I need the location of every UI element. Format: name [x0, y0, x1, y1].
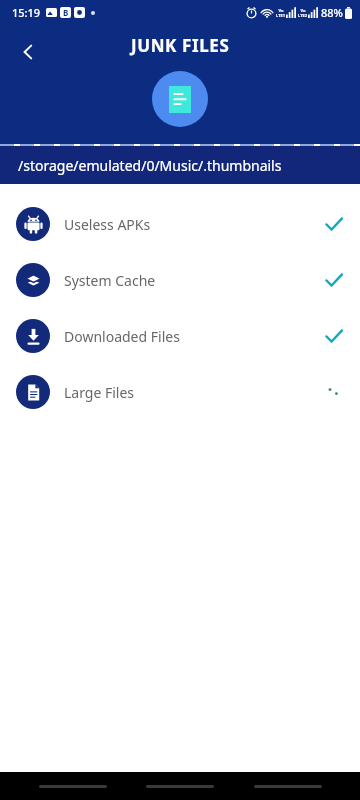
staticText: LTE2 [298, 13, 307, 18]
button[interactable]: Useless APKs [0, 196, 360, 252]
staticText: 15:19 [12, 5, 41, 20]
staticText: LTE1 [276, 13, 285, 18]
staticText: Vo [300, 8, 306, 13]
staticText: System Cache [64, 271, 156, 290]
staticText: Vo [278, 8, 284, 13]
staticText: /storage/emulated/0/Music/.thumbnails [18, 156, 282, 175]
button[interactable]: Navigation button [253, 774, 323, 798]
staticText: JUNK FILES [131, 34, 230, 57]
button[interactable]: Large Files [0, 364, 360, 420]
staticText: Large Files [64, 383, 135, 402]
button[interactable]: Downloaded Files [0, 308, 360, 364]
staticText: B [63, 7, 69, 18]
button[interactable]: /storage/emulated/0/Music/.thumbnails [0, 146, 360, 184]
staticText: Downloaded Files [64, 327, 180, 346]
button[interactable]: Back [6, 30, 50, 74]
staticText: Useless APKs [64, 215, 151, 234]
button[interactable]: Navigation button [145, 774, 215, 798]
button[interactable]: Navigation button [38, 774, 108, 798]
button[interactable]: System Cache [0, 252, 360, 308]
staticText: 88% [321, 5, 343, 20]
